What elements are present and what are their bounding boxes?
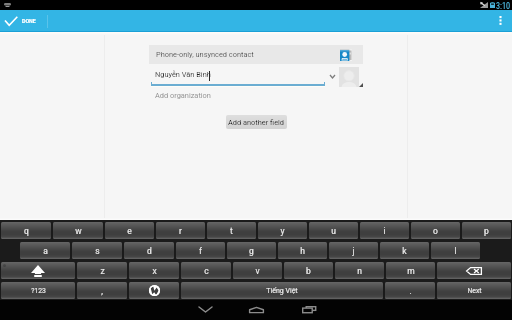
button[interactable]: w	[53, 222, 103, 239]
staticText: Next	[467, 287, 482, 295]
button[interactable]: Home	[236, 300, 276, 319]
button[interactable]: .	[385, 282, 435, 299]
staticText: ?123	[31, 287, 46, 295]
staticText: p	[484, 226, 489, 236]
button[interactable]: t	[207, 222, 256, 239]
button[interactable]: n	[335, 262, 384, 279]
button[interactable]: q	[1, 222, 51, 239]
button[interactable]: f	[176, 242, 225, 259]
staticText: t	[230, 226, 233, 236]
button[interactable]: i	[360, 222, 409, 239]
button[interactable]: k	[380, 242, 429, 259]
staticText: z	[100, 266, 105, 276]
staticText: k	[402, 246, 407, 256]
button[interactable]: Backspace	[437, 262, 511, 279]
staticText: x	[152, 266, 157, 276]
button[interactable]: DONE	[0, 10, 47, 31]
staticText: e	[127, 226, 132, 236]
button[interactable]: Add photo	[339, 67, 359, 87]
button[interactable]: ,	[77, 282, 127, 299]
button[interactable]: Phone-only, unsynced contact	[149, 45, 363, 64]
button[interactable]: y	[258, 222, 307, 239]
button[interactable]: p	[462, 222, 511, 239]
button[interactable]: j	[329, 242, 378, 259]
button[interactable]: u	[309, 222, 358, 239]
staticText: c	[204, 266, 209, 276]
staticText: q	[24, 226, 29, 236]
staticText: a	[43, 246, 48, 256]
button[interactable]: Hide keyboard	[185, 300, 225, 319]
staticText: s	[95, 246, 100, 256]
staticText: l	[454, 246, 457, 256]
staticText: .	[409, 286, 412, 296]
staticText: n	[357, 266, 362, 276]
staticText: m	[407, 266, 415, 276]
button[interactable]: a	[20, 242, 70, 259]
staticText: Add organization	[155, 91, 211, 100]
staticText: o	[433, 226, 438, 236]
staticText: y	[280, 226, 285, 236]
staticText: b	[306, 266, 311, 276]
button[interactable]: z	[77, 262, 127, 279]
staticText: Phone-only, unsynced contact	[156, 50, 254, 59]
button[interactable]: c	[181, 262, 231, 279]
staticText: Nguyễn Văn Bình	[155, 70, 211, 79]
staticText: u	[331, 226, 336, 236]
staticText: DONE	[22, 17, 36, 24]
staticText: g	[249, 246, 254, 256]
staticText: d	[147, 246, 152, 256]
button[interactable]: o	[411, 222, 460, 239]
button[interactable]: b	[284, 262, 333, 279]
staticText: v	[255, 266, 260, 276]
button[interactable]: Shift	[1, 262, 75, 279]
button[interactable]: x	[129, 262, 179, 279]
staticText: ,	[101, 286, 103, 296]
button[interactable]: Recent apps	[289, 300, 329, 319]
button[interactable]: Change language	[129, 282, 179, 299]
staticText: r	[179, 226, 182, 236]
button[interactable]: g	[227, 242, 276, 259]
button[interactable]: e	[105, 222, 154, 239]
staticText: Tiếng Việt	[266, 287, 298, 295]
button[interactable]: r	[156, 222, 205, 239]
button[interactable]: Add another field	[226, 115, 287, 129]
button[interactable]: d	[124, 242, 174, 259]
button[interactable]: ?123	[1, 282, 75, 299]
button[interactable]: h	[278, 242, 327, 259]
button[interactable]: Next	[437, 282, 511, 299]
staticText: j	[352, 246, 355, 256]
button[interactable]: Add organization	[155, 91, 211, 100]
button[interactable]: More options	[487, 10, 512, 31]
button[interactable]: m	[386, 262, 435, 279]
staticText: w	[75, 226, 82, 236]
staticText: Add another field	[228, 118, 285, 127]
button[interactable]: l	[431, 242, 480, 259]
button[interactable]: Tiếng Việt	[181, 282, 383, 299]
staticText: 3:10	[496, 1, 511, 11]
button[interactable]: s	[72, 242, 122, 259]
staticText: f	[199, 246, 202, 256]
staticText: i	[383, 226, 386, 236]
staticText: h	[300, 246, 305, 256]
button[interactable]: v	[233, 262, 282, 279]
